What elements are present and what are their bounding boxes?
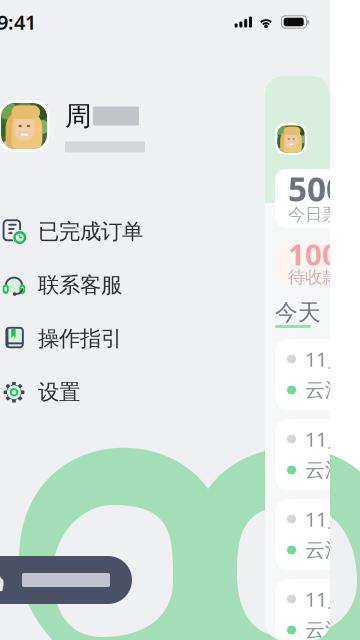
staticText: 云滴总部 <box>305 538 360 562</box>
staticText: 500.00 <box>288 166 360 211</box>
staticText: 9:41 <box>0 9 36 35</box>
staticText: 今日票款 <box>288 204 356 225</box>
staticText: 待收款(元) <box>288 265 360 288</box>
button[interactable]: 已完成订单 <box>0 205 265 258</box>
button[interactable]: 当前车辆 <box>0 556 132 604</box>
staticText: 云滴总部 <box>305 378 360 402</box>
staticText: 今天 <box>275 299 321 326</box>
staticText: 11月12日 <box>305 346 360 372</box>
button[interactable]: 联系客服 <box>0 258 265 312</box>
staticText: 设置 <box>38 379 80 405</box>
button[interactable]: 设置 <box>0 365 265 419</box>
staticText: 云滴总部 <box>305 618 360 640</box>
staticText: 11月12日 <box>305 506 360 532</box>
button[interactable]: 操作指引 <box>0 312 265 365</box>
staticText: 11月12日 <box>305 426 360 452</box>
button[interactable]: 周 <box>0 94 260 158</box>
staticText: 100.50 <box>288 234 360 273</box>
staticText: 周 <box>65 100 92 132</box>
staticText: 云滴总部 <box>305 458 360 482</box>
staticText: 联系客服 <box>38 272 122 298</box>
staticText: 操作指引 <box>38 326 122 352</box>
staticText: 11月12日 <box>305 586 360 612</box>
staticText: 已完成订单 <box>38 219 143 245</box>
